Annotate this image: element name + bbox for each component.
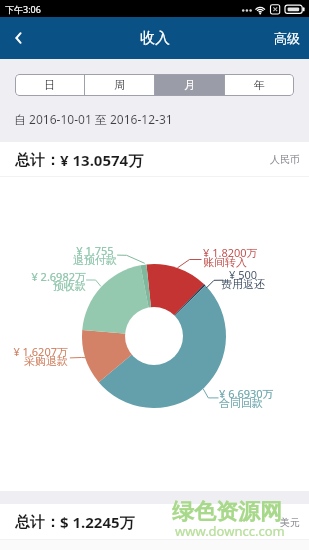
- staticText: 自 2016-10-01 至 2016-12-31: [14, 111, 173, 127]
- staticText: 总计：: [15, 151, 60, 170]
- button[interactable]: 月: [155, 74, 224, 96]
- button[interactable]: 年: [225, 74, 294, 96]
- staticText: 人民币: [270, 153, 300, 166]
- staticText: ¥ 1,755 退预付款: [71, 243, 119, 268]
- button[interactable]: 周: [85, 74, 154, 96]
- staticText: ¥ 6.6930万 合同回款: [219, 386, 274, 411]
- staticText: 收入: [140, 29, 170, 48]
- staticText: www.downcc.com: [175, 522, 285, 540]
- staticText: ¥ 13.0574万: [60, 150, 144, 170]
- button[interactable]: 日: [15, 74, 84, 96]
- staticText: 年: [254, 78, 265, 92]
- staticText: 总计：: [15, 513, 60, 532]
- staticText: 日: [44, 78, 55, 92]
- staticText: 周: [114, 78, 125, 92]
- button[interactable]: 高级: [265, 21, 309, 55]
- staticText: ¥ 1.6207万 采购退款: [8, 344, 68, 369]
- staticText: 绿色资源网: [172, 498, 282, 526]
- staticText: ¥ 500 费用返还: [219, 267, 267, 292]
- staticText: $ 1.2245万: [60, 512, 135, 532]
- button[interactable]: Back: [0, 19, 38, 57]
- staticText: 高级: [274, 30, 300, 46]
- staticText: 月: [184, 78, 195, 92]
- staticText: ¥ 1.8200万 账间转入: [203, 245, 258, 270]
- staticText: ¥ 2.6982万 预收款: [23, 269, 86, 294]
- staticText: 下午3:06: [5, 3, 41, 15]
- staticText: 美元: [280, 516, 300, 529]
